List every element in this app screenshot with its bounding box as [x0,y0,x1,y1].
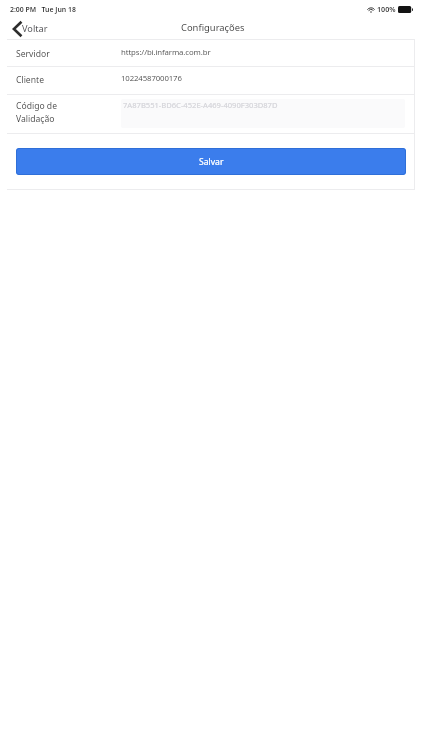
button[interactable]: Servidor [0,39,422,66]
staticText: Código de Validação [16,100,57,124]
staticText: 10224587000176 [121,73,182,84]
button[interactable]: Salvar [16,148,406,175]
staticText: Salvar [199,156,224,168]
staticText: Cliente [16,74,44,86]
staticText: Configurações [181,21,245,34]
staticText: 2:00 PM Tue Jun 18 [10,5,76,14]
staticText: 7A87B551-BD6C-452E-A469-4090F303D87D [123,100,278,110]
staticText: https://bi.infarma.com.br [121,47,211,58]
staticText: 100% [377,4,396,14]
staticText: Voltar [22,22,48,35]
staticText: Servidor [16,48,50,60]
button[interactable]: Voltar [6,18,52,39]
button[interactable]: Cliente [0,65,422,92]
button[interactable]: Código de Validação [0,95,422,134]
